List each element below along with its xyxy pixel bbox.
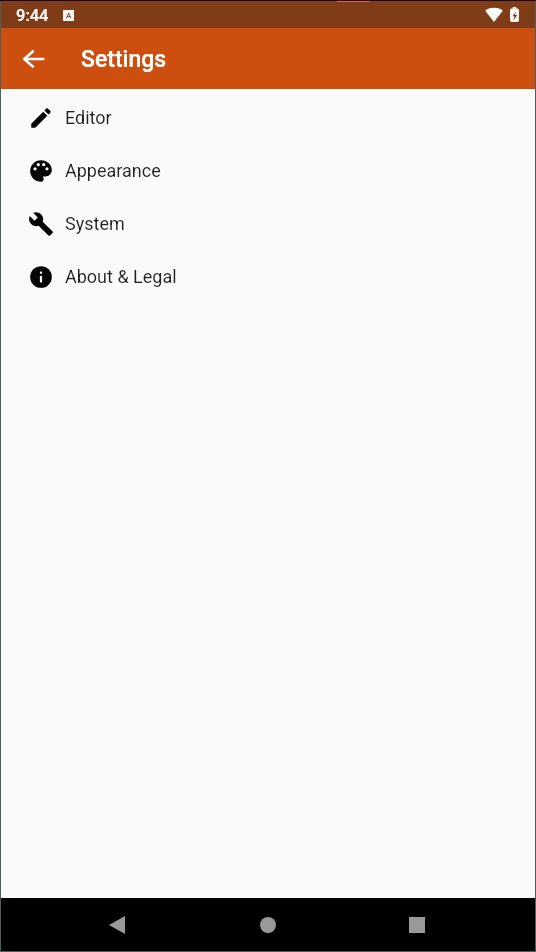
staticText: 9:44	[16, 6, 49, 25]
staticText: Editor	[65, 107, 112, 128]
button[interactable]: Recents	[393, 901, 441, 949]
button[interactable]: About & Legal	[0, 250, 536, 303]
staticText: About & Legal	[65, 266, 177, 287]
staticText: Settings	[81, 46, 167, 73]
staticText: Appearance	[65, 160, 161, 181]
button[interactable]: Back	[9, 35, 57, 83]
button[interactable]: System	[0, 197, 536, 250]
button[interactable]: Editor	[0, 91, 536, 144]
staticText: System	[65, 213, 125, 234]
button[interactable]: Back	[93, 901, 141, 949]
button[interactable]: Home	[244, 901, 292, 949]
staticText: A	[66, 11, 72, 20]
button[interactable]: Appearance	[0, 144, 536, 197]
